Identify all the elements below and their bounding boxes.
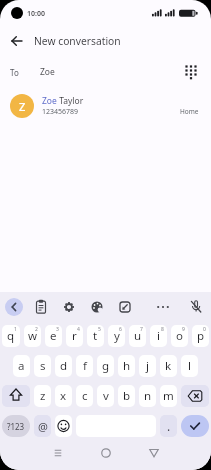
staticText: 2: [35, 326, 38, 333]
button[interactable]: u: [129, 325, 146, 347]
button[interactable]: [98, 445, 114, 461]
button[interactable]: j: [139, 355, 156, 377]
staticText: 9: [182, 326, 185, 333]
button[interactable]: l: [181, 355, 198, 377]
staticText: a: [18, 358, 25, 374]
staticText: y: [114, 328, 120, 344]
button[interactable]: r: [66, 325, 83, 347]
button[interactable]: [33, 298, 49, 316]
button[interactable]: s: [34, 355, 51, 377]
button[interactable]: t: [87, 325, 104, 347]
staticText: p: [197, 328, 205, 344]
staticText: o: [176, 328, 183, 344]
button[interactable]: q: [2, 325, 20, 347]
staticText: 1: [14, 326, 17, 333]
staticText: k: [165, 358, 172, 374]
staticText: 4: [77, 326, 80, 333]
staticText: b: [123, 388, 131, 404]
button[interactable]: h: [118, 355, 135, 377]
button[interactable]: [183, 64, 199, 80]
staticText: ?123: [7, 421, 25, 432]
staticText: g: [102, 358, 110, 374]
button[interactable]: c: [76, 385, 93, 407]
staticText: w: [28, 328, 38, 344]
button[interactable]: p: [192, 325, 209, 347]
staticText: z: [40, 388, 46, 404]
staticText: 5: [98, 326, 101, 333]
staticText: u: [134, 328, 142, 344]
staticText: h: [123, 358, 131, 374]
staticText: 123456789: [42, 107, 79, 117]
button[interactable]: [146, 445, 162, 461]
staticText: t: [93, 328, 98, 344]
button[interactable]: [155, 298, 171, 316]
button[interactable]: [10, 34, 24, 48]
button[interactable]: [2, 385, 30, 407]
staticText: 6: [119, 326, 122, 333]
staticText: j: [146, 358, 149, 374]
staticText: 8: [161, 326, 164, 333]
staticText: d: [60, 358, 68, 374]
button[interactable]: y: [108, 325, 125, 347]
staticText: q: [7, 328, 15, 344]
staticText: Taylor: [57, 95, 84, 107]
button[interactable]: [5, 298, 23, 316]
button[interactable]: [50, 445, 66, 461]
button[interactable]: [188, 298, 204, 316]
staticText: 7: [140, 326, 143, 333]
staticText: Home: [180, 107, 199, 116]
staticText: .: [167, 418, 171, 434]
staticText: r: [72, 328, 77, 344]
staticText: x: [60, 388, 67, 404]
button[interactable]: k: [160, 355, 177, 377]
staticText: Zoe: [42, 95, 57, 107]
staticText: v: [103, 388, 109, 404]
staticText: n: [144, 388, 152, 404]
button[interactable]: Z: [10, 88, 199, 124]
button[interactable]: [117, 298, 133, 316]
button[interactable]: o: [171, 325, 188, 347]
button[interactable]: i: [150, 325, 167, 347]
staticText: 3: [56, 326, 59, 333]
button[interactable]: x: [55, 385, 72, 407]
button[interactable]: [181, 415, 209, 437]
button[interactable]: z: [34, 385, 51, 407]
staticText: i: [157, 328, 160, 344]
staticText: m: [163, 388, 174, 404]
button[interactable]: .: [160, 415, 177, 437]
button[interactable]: b: [118, 385, 135, 407]
button[interactable]: g: [97, 355, 114, 377]
staticText: Z: [19, 99, 26, 114]
button[interactable]: n: [139, 385, 156, 407]
button[interactable]: v: [97, 385, 114, 407]
staticText: c: [82, 388, 88, 404]
staticText: f: [83, 358, 87, 374]
staticText: 0: [203, 326, 206, 333]
staticText: @: [38, 419, 48, 434]
button[interactable]: @: [34, 415, 51, 437]
button[interactable]: [89, 298, 105, 316]
button[interactable]: ?123: [2, 415, 30, 437]
staticText: To: [10, 67, 19, 78]
button[interactable]: [61, 298, 77, 316]
staticText: l: [188, 358, 191, 374]
staticText: 10:00: [27, 9, 45, 19]
button[interactable]: f: [76, 355, 93, 377]
button[interactable]: w: [24, 325, 41, 347]
staticText: New conversation: [34, 34, 121, 48]
button[interactable]: m: [160, 385, 177, 407]
staticText: Zoe: [40, 66, 55, 78]
button[interactable]: e: [45, 325, 62, 347]
staticText: e: [50, 328, 57, 344]
button[interactable]: a: [13, 355, 30, 377]
button[interactable]: d: [55, 355, 72, 377]
staticText: s: [40, 358, 46, 374]
button[interactable]: [55, 415, 72, 437]
button[interactable]: [181, 385, 209, 407]
